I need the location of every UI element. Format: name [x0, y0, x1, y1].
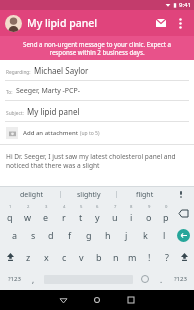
button[interactable]: ,: [25, 268, 41, 290]
staticText: Subject:: [6, 110, 24, 117]
button[interactable]: h: [98, 224, 117, 246]
button[interactable]: d: [42, 224, 60, 246]
button[interactable]: Shift: [175, 246, 193, 268]
staticText: n: [113, 251, 119, 263]
staticText: Hi Dr. Seeger, I just saw my latest chol…: [6, 152, 188, 170]
staticText: h: [105, 229, 111, 241]
staticText: ?123: [8, 275, 21, 283]
button[interactable]: m: [124, 246, 141, 268]
staticText: t: [79, 211, 83, 223]
staticText: (up to 5): [80, 130, 100, 137]
button[interactable]: g: [79, 224, 98, 246]
button[interactable]: More options: [171, 14, 189, 32]
staticText: 3: [45, 204, 48, 210]
button[interactable]: 2: [19, 202, 37, 224]
button[interactable]: x: [37, 246, 55, 268]
staticText: 6: [96, 204, 99, 210]
staticText: s: [31, 229, 36, 241]
button[interactable]: a: [6, 224, 24, 246]
staticText: 1: [9, 204, 12, 210]
button[interactable]: slightly: [61, 187, 116, 202]
button[interactable]: Regarding:: [0, 60, 194, 81]
staticText: 4: [63, 204, 66, 210]
staticText: l: [163, 229, 166, 241]
staticText: ?: [165, 251, 169, 263]
button[interactable]: s: [24, 224, 42, 246]
staticText: w: [24, 211, 32, 223]
staticText: a: [12, 229, 18, 241]
button[interactable]: Recents: [114, 290, 148, 310]
button[interactable]: .: [153, 268, 169, 290]
button[interactable]: Back: [46, 290, 80, 310]
button[interactable]: f: [60, 224, 79, 246]
staticText: Add an attachment: [23, 129, 80, 137]
button[interactable]: Shift: [1, 246, 19, 268]
staticText: ,: [32, 274, 35, 285]
staticText: 9:41: [179, 1, 191, 9]
button[interactable]: 0: [157, 202, 174, 224]
button[interactable]: Home: [80, 290, 114, 310]
button[interactable]: Backspace: [174, 202, 193, 224]
button[interactable]: Enter: [174, 224, 193, 246]
staticText: 2: [27, 204, 30, 210]
staticText: y: [95, 211, 100, 223]
staticText: u: [112, 211, 118, 223]
button[interactable]: c: [55, 246, 73, 268]
button[interactable]: 4: [55, 202, 72, 224]
button[interactable]: Profile: [5, 15, 22, 32]
staticText: Send a non-urgent message to your clinic…: [9, 40, 185, 56]
staticText: m: [128, 251, 137, 263]
staticText: .: [160, 274, 163, 285]
button[interactable]: 9: [140, 202, 157, 224]
staticText: Regarding:: [6, 69, 31, 76]
staticText: 5: [80, 204, 83, 210]
button[interactable]: !: [141, 246, 158, 268]
staticText: 0: [165, 204, 168, 210]
button[interactable]: l: [155, 224, 174, 246]
button[interactable]: Subject:: [0, 101, 194, 122]
button[interactable]: delight: [4, 187, 60, 202]
button[interactable]: k: [136, 224, 155, 246]
staticText: To:: [6, 89, 13, 96]
staticText: slightly: [77, 190, 101, 200]
button[interactable]: 3: [37, 202, 55, 224]
staticText: g: [86, 229, 92, 241]
button[interactable]: 5: [72, 202, 89, 224]
button[interactable]: To:: [0, 81, 194, 101]
button[interactable]: Emoji: [136, 268, 153, 290]
staticText: !: [148, 251, 151, 263]
button[interactable]: ?: [158, 246, 175, 268]
staticText: o: [146, 211, 152, 223]
staticText: My lipid panel: [27, 106, 80, 117]
button[interactable]: Add an attachment: [0, 122, 194, 144]
staticText: f: [68, 229, 72, 241]
button[interactable]: n: [107, 246, 124, 268]
staticText: ?123: [174, 275, 187, 283]
button[interactable]: ?123: [169, 268, 191, 290]
button[interactable]: flight: [117, 187, 172, 202]
staticText: 9: [148, 204, 151, 210]
button[interactable]: 6: [89, 202, 106, 224]
staticText: flight: [136, 190, 154, 200]
staticText: 7: [114, 204, 117, 210]
button[interactable]: b: [90, 246, 107, 268]
button[interactable]: z: [19, 246, 37, 268]
staticText: p: [163, 211, 169, 223]
staticText: 8: [130, 204, 133, 210]
staticText: My lipid panel: [27, 16, 98, 30]
staticText: v: [79, 251, 84, 263]
staticText: Seeger, Marty -PCP-: [16, 86, 80, 96]
button[interactable]: 8: [123, 202, 140, 224]
staticText: r: [62, 211, 66, 223]
button[interactable]: Voice input: [172, 187, 190, 202]
staticText: c: [62, 251, 67, 263]
button[interactable]: 1: [1, 202, 19, 224]
button[interactable]: 7: [106, 202, 123, 224]
button[interactable]: j: [117, 224, 136, 246]
button[interactable]: ?123: [3, 268, 25, 290]
button[interactable]: v: [73, 246, 90, 268]
staticText: z: [26, 251, 31, 263]
staticText: Michael Saylor: [34, 65, 89, 76]
button[interactable]: Send message: [151, 13, 171, 33]
